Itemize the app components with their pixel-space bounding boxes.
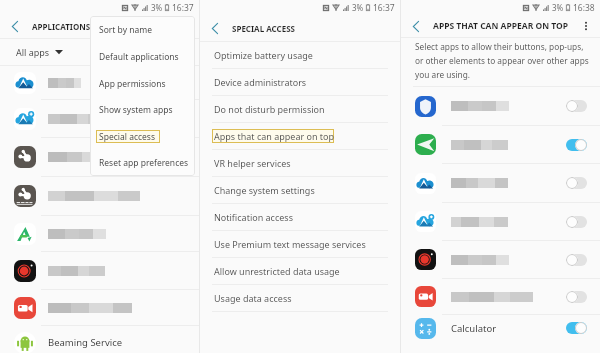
button[interactable]: Notification access <box>200 204 400 230</box>
button[interactable]: Toggle permission <box>566 139 587 151</box>
staticText: Sort by name <box>99 24 152 36</box>
button[interactable]: Toggle permission <box>401 279 600 314</box>
button[interactable]: App permissions <box>90 70 195 97</box>
button[interactable]: More options <box>580 20 592 32</box>
button[interactable]: Toggle permission <box>566 177 587 189</box>
staticText: 16:38 <box>573 2 595 14</box>
staticText: Show system apps <box>99 104 173 116</box>
button[interactable]: Do not disturb permission <box>200 96 400 122</box>
staticText: 3% <box>151 2 163 13</box>
button[interactable]: Use Premium text message services <box>200 231 400 257</box>
button[interactable] <box>0 252 199 289</box>
button[interactable] <box>0 100 199 137</box>
button[interactable] <box>0 177 199 215</box>
button[interactable]: Change system settings <box>200 177 400 203</box>
staticText: APPLICATIONS <box>32 21 91 32</box>
button[interactable]: Apps that can appear on top <box>200 123 400 149</box>
button[interactable]: Sort by name <box>90 16 195 44</box>
button[interactable]: Toggle permission <box>566 254 587 266</box>
staticText: Default applications <box>99 51 179 63</box>
staticText: Reset app preferences <box>99 157 189 169</box>
button[interactable]: Reset app preferences <box>90 150 195 176</box>
staticText: 3% <box>352 2 364 13</box>
staticText: Calculator <box>451 322 497 335</box>
button[interactable]: Usage data access <box>200 285 400 311</box>
staticText: Special access <box>99 131 155 143</box>
button[interactable]: All apps <box>16 46 63 58</box>
staticText: Change system settings <box>214 184 315 196</box>
button[interactable]: Calculator <box>401 315 600 341</box>
staticText: App permissions <box>99 78 166 90</box>
button[interactable]: Navigate up <box>9 20 20 33</box>
staticText: Allow unrestricted data usage <box>214 265 340 277</box>
button[interactable]: Toggle permission <box>566 291 587 303</box>
button[interactable]: Toggle permission <box>566 322 587 334</box>
staticText: VR helper services <box>214 157 291 169</box>
button[interactable]: Device administrators <box>200 69 400 95</box>
button[interactable]: Toggle permission <box>401 87 600 125</box>
button[interactable]: Special access <box>90 123 195 150</box>
button[interactable]: Optimize battery usage <box>200 42 400 68</box>
staticText: Select apps to allow their buttons, pop-… <box>415 41 590 80</box>
staticText: 16:37 <box>373 2 395 14</box>
staticText: Use Premium text message services <box>214 238 366 250</box>
staticText: Usage data access <box>214 292 292 304</box>
button[interactable]: Toggle permission <box>566 216 587 228</box>
button[interactable]: Allow unrestricted data usage <box>200 258 400 284</box>
button[interactable]: Toggle permission <box>401 164 600 202</box>
button[interactable]: Toggle permission <box>566 100 587 112</box>
button[interactable] <box>0 138 199 176</box>
staticText: Apps that can appear on top <box>214 130 335 142</box>
staticText: Notification access <box>214 211 293 223</box>
staticText: Device administrators <box>214 76 307 88</box>
button[interactable]: Toggle permission <box>401 241 600 278</box>
staticText: SPECIAL ACCESS <box>232 23 295 34</box>
button[interactable]: Show system apps <box>90 97 195 123</box>
staticText: Beaming Service <box>48 336 123 349</box>
button[interactable]: Navigate up <box>410 20 421 33</box>
staticText: 16:37 <box>172 2 194 14</box>
button[interactable] <box>0 216 199 251</box>
button[interactable]: VR helper services <box>200 150 400 176</box>
button[interactable]: Toggle permission <box>401 203 600 240</box>
staticText: Optimize battery usage <box>214 49 313 61</box>
staticText: APPS THAT CAN APPEAR ON TOP <box>433 20 569 32</box>
button[interactable]: Toggle permission <box>401 126 600 163</box>
button[interactable]: Navigate up <box>209 22 220 35</box>
button[interactable]: Beaming Service <box>0 326 199 353</box>
button[interactable]: Default applications <box>90 44 195 70</box>
button[interactable] <box>0 290 199 325</box>
staticText: 3% <box>552 2 564 13</box>
button[interactable] <box>0 66 199 99</box>
staticText: All apps <box>16 46 50 58</box>
staticText: Do not disturb permission <box>214 103 325 115</box>
